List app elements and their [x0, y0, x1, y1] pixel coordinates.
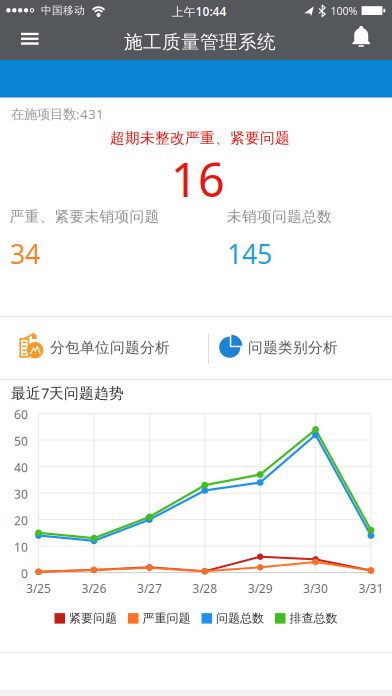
staticText: 16 — [171, 148, 225, 210]
staticText: 在施项目数:431 — [11, 105, 104, 123]
button[interactable]: 菜单 — [0, 0, 60, 60]
staticText: 3/29 — [248, 580, 273, 596]
staticText: 问题类别分析 — [248, 339, 338, 357]
staticText: 60 — [14, 407, 28, 422]
button[interactable]: 分包单位问题分析 — [0, 317, 208, 379]
staticText: 分包单位问题分析 — [50, 339, 170, 357]
staticText: 3/28 — [192, 580, 217, 596]
staticText: 3/26 — [81, 580, 106, 596]
staticText: 40 — [14, 460, 28, 475]
staticText: 3/31 — [358, 580, 383, 596]
staticText: 10 — [14, 539, 28, 555]
staticText: 中国移动 — [41, 4, 85, 17]
staticText: 紧要问题 — [69, 611, 117, 626]
staticText: 最近7天问题趋势 — [11, 383, 124, 402]
staticText: 20 — [14, 513, 28, 528]
staticText: 145 — [227, 236, 272, 271]
staticText: 34 — [10, 236, 40, 271]
staticText: 3/30 — [303, 580, 328, 596]
staticText: 30 — [14, 486, 28, 502]
staticText: 排查总数 — [289, 611, 337, 626]
staticText: 未销项问题总数 — [227, 207, 332, 225]
staticText: 超期未整改严重、紧要问题 — [110, 129, 290, 147]
staticText: 3/25 — [26, 580, 51, 596]
staticText: 50 — [14, 433, 28, 449]
staticText: 问题总数 — [216, 611, 264, 626]
staticText: 100% — [330, 4, 357, 18]
staticText: 施工质量管理系统 — [124, 30, 276, 53]
button[interactable]: 通知 — [340, 4, 384, 56]
staticText: 3/27 — [137, 580, 162, 596]
staticText: 严重、紧要未销项问题 — [9, 207, 159, 225]
staticText: 严重问题 — [142, 611, 190, 626]
button[interactable]: 问题类别分析 — [208, 317, 392, 379]
staticText: 0 — [21, 566, 28, 581]
staticText: 上午10:44 — [171, 3, 226, 19]
